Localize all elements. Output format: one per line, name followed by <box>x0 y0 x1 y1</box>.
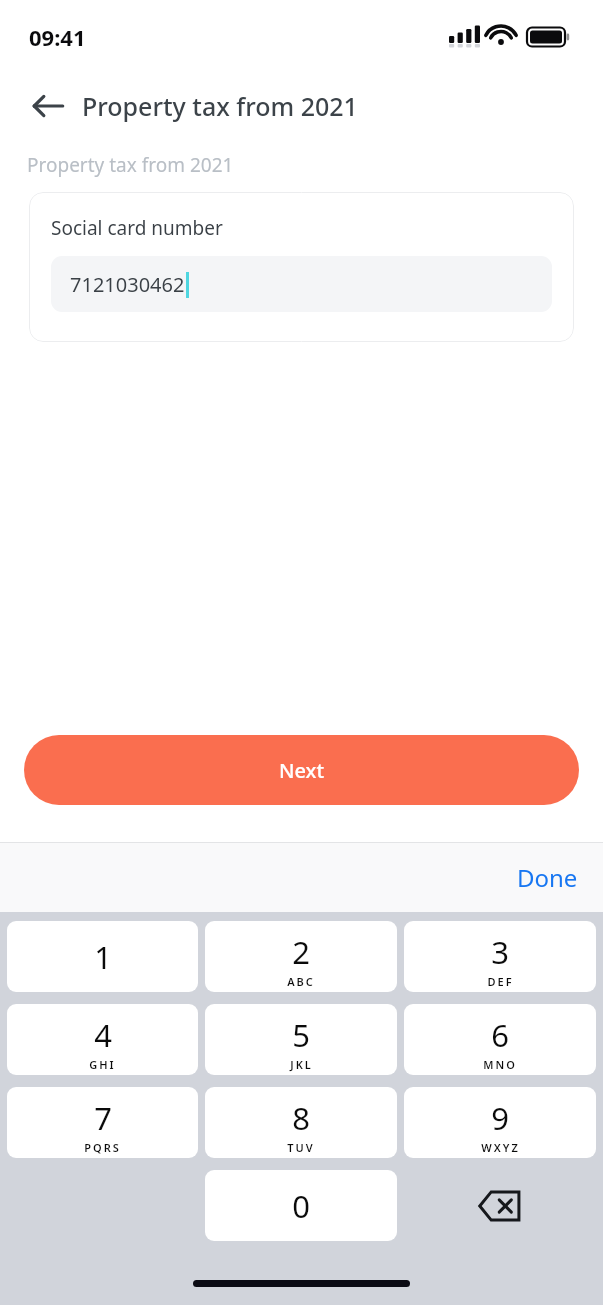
staticText: DEF <box>487 974 514 989</box>
button[interactable]: 1 <box>7 921 198 992</box>
staticText: 2 <box>292 931 310 973</box>
staticText: 3 <box>491 931 509 973</box>
staticText: 6 <box>491 1014 509 1056</box>
staticText: JKL <box>290 1057 313 1072</box>
staticText: 5 <box>292 1014 310 1056</box>
button[interactable]: 5 <box>205 1004 397 1075</box>
button[interactable]: 3 <box>404 921 596 992</box>
staticText: 1 <box>94 936 112 978</box>
button[interactable]: 7 <box>7 1087 198 1158</box>
staticText: Property tax from 2021 <box>27 152 234 178</box>
button[interactable]: Done <box>506 853 589 902</box>
staticText: 0 <box>292 1185 310 1227</box>
button[interactable]: 4 <box>7 1004 198 1075</box>
button[interactable]: 7121030462 <box>51 256 552 312</box>
button[interactable]: Next <box>24 735 579 805</box>
staticText: TUV <box>287 1140 315 1155</box>
staticText: Property tax from 2021 <box>82 89 358 123</box>
staticText: Social card number <box>51 215 223 241</box>
button[interactable]: 9 <box>404 1087 596 1158</box>
staticText: Next <box>279 757 325 784</box>
staticText: 8 <box>292 1097 310 1139</box>
staticText: MNO <box>483 1057 517 1072</box>
staticText: 09:41 <box>29 22 86 52</box>
staticText: WXYZ <box>481 1140 520 1155</box>
staticText: PQRS <box>84 1140 121 1155</box>
button[interactable]: 8 <box>205 1087 397 1158</box>
staticText: GHI <box>89 1057 116 1072</box>
button[interactable]: Delete <box>404 1170 596 1241</box>
staticText: ABC <box>287 974 315 989</box>
staticText: 7121030462 <box>70 271 185 298</box>
button[interactable]: 0 <box>205 1170 397 1241</box>
button[interactable]: 2 <box>205 921 397 992</box>
staticText: 9 <box>491 1097 509 1139</box>
staticText: 7 <box>94 1097 112 1139</box>
button[interactable]: 6 <box>404 1004 596 1075</box>
button[interactable]: Back <box>24 82 72 130</box>
staticText: 4 <box>94 1014 112 1056</box>
staticText: Done <box>517 861 578 894</box>
